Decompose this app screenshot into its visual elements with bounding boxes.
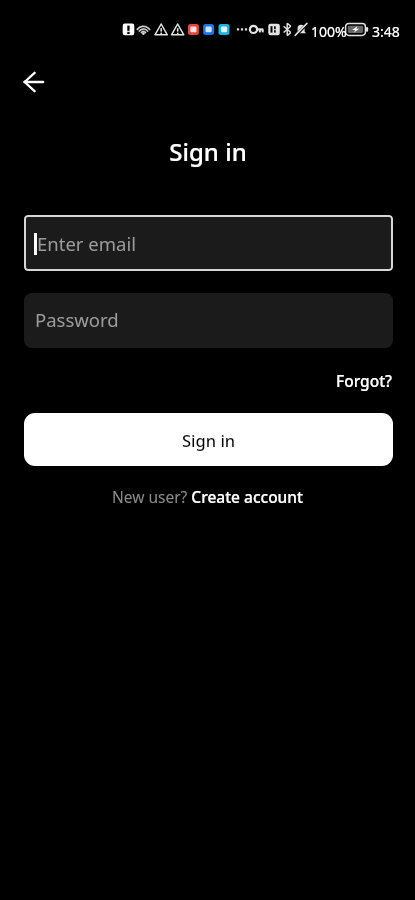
button[interactable]: Password [24,293,393,348]
staticText: Forgot? [336,370,393,391]
staticText: Enter email [37,231,136,256]
button[interactable]: New user? Create account [104,482,311,511]
button[interactable]: Enter email [24,215,393,271]
button[interactable]: Back [10,58,58,106]
staticText: Sign in [182,429,236,451]
staticText: Sign in [169,135,247,168]
staticText: 100% [311,22,347,41]
button[interactable]: Forgot? [328,364,401,397]
staticText: Password [35,307,119,332]
staticText: 3:48 [372,22,400,41]
button[interactable]: Sign in [24,413,393,466]
